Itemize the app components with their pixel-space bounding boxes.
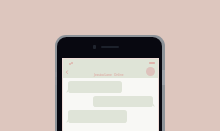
staticText: Jessica Lane: [94, 73, 112, 77]
button[interactable]: Back: [64, 69, 70, 75]
staticText: Online: [114, 73, 124, 77]
button[interactable]: [66, 110, 127, 123]
button[interactable]: [93, 96, 155, 107]
button[interactable]: Jessica Lane: [94, 73, 124, 77]
button[interactable]: [66, 81, 122, 93]
button[interactable]: Profile photo: [146, 67, 155, 76]
